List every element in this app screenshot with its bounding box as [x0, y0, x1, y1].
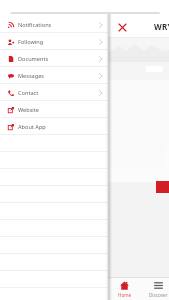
staticText: Documents	[18, 55, 49, 63]
button[interactable]: Contact	[0, 84, 108, 100]
button[interactable]: Close	[116, 21, 129, 34]
staticText: Discover	[149, 292, 168, 298]
staticText: Contact	[18, 89, 39, 97]
staticText: WRYTER	[154, 21, 169, 32]
button[interactable]: About App	[0, 118, 108, 134]
staticText: Messages	[18, 72, 44, 80]
staticText: Website	[18, 106, 39, 114]
button[interactable]: Messages	[0, 67, 108, 83]
button[interactable]: Discover	[141, 278, 169, 300]
staticText: Home	[118, 292, 132, 298]
button[interactable]: Following	[0, 33, 108, 49]
staticText: Notifications	[18, 21, 52, 29]
staticText: Following	[18, 38, 44, 46]
staticText: About App	[18, 123, 46, 131]
button[interactable]: Home	[108, 278, 141, 300]
button[interactable]: Notifications	[0, 16, 108, 32]
button[interactable]: Documents	[0, 50, 108, 66]
button[interactable]: Website	[0, 101, 108, 117]
